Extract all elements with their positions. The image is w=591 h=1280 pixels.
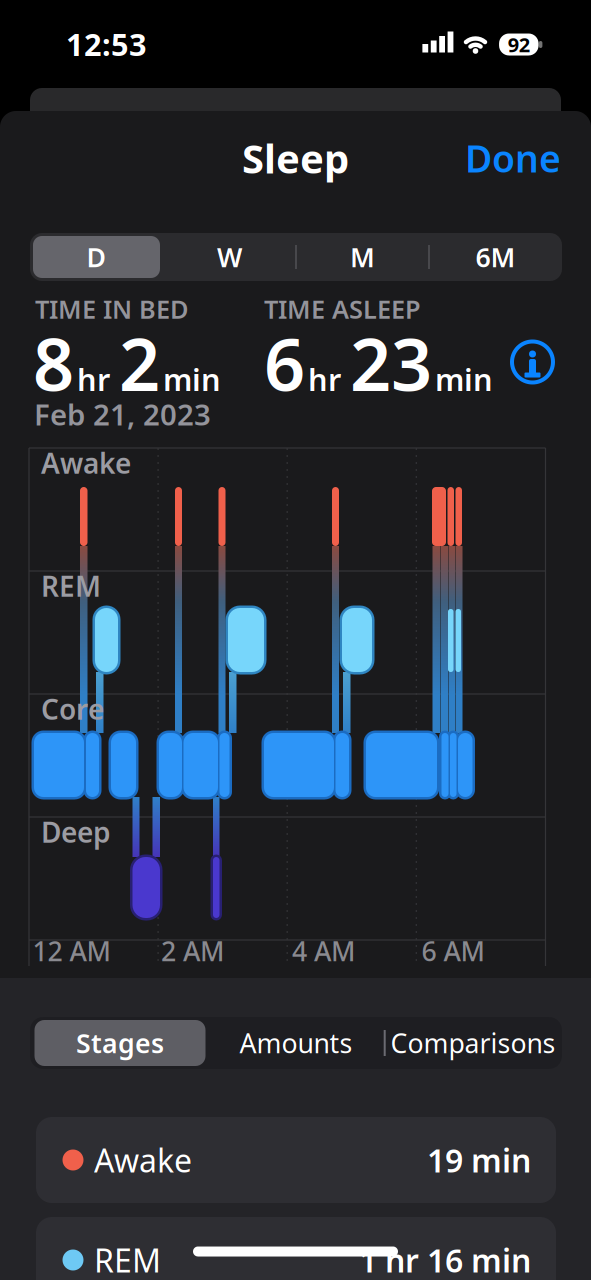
- button[interactable]: M: [302, 235, 422, 279]
- staticText: 4 AM: [292, 933, 355, 969]
- button[interactable]: 6M: [435, 235, 555, 279]
- staticText: 19 min: [427, 1139, 531, 1181]
- button[interactable]: Stages: [32, 1020, 207, 1066]
- staticText: REM: [94, 1239, 161, 1280]
- staticText: 6: [264, 315, 305, 411]
- staticText: Awake: [41, 444, 131, 482]
- staticText: REM: [41, 567, 101, 605]
- staticText: 12:53: [66, 24, 147, 64]
- staticText: Deep: [41, 813, 111, 851]
- staticText: 12 AM: [32, 933, 110, 969]
- staticText: 8: [33, 315, 74, 411]
- staticText: Core: [41, 690, 104, 728]
- staticText: 92: [508, 31, 530, 58]
- staticText: W: [217, 239, 242, 275]
- staticText: 2 AM: [161, 933, 224, 969]
- staticText: TIME IN BED: [35, 292, 189, 326]
- staticText: 2: [119, 315, 160, 411]
- staticText: Stages: [76, 1025, 164, 1061]
- button[interactable]: REM: [36, 1217, 556, 1280]
- staticText: Sleep: [242, 131, 349, 184]
- staticText: Comparisons: [390, 1025, 555, 1061]
- staticText: min: [435, 359, 493, 399]
- button[interactable]: Comparisons: [384, 1020, 562, 1066]
- button[interactable]: Done: [451, 135, 561, 181]
- staticText: 6 AM: [421, 933, 484, 969]
- button[interactable]: Amounts: [208, 1020, 383, 1066]
- staticText: min: [163, 359, 221, 399]
- button[interactable]: D: [36, 235, 156, 279]
- staticText: M: [350, 239, 375, 275]
- button[interactable]: Awake: [36, 1117, 556, 1203]
- staticText: Awake: [94, 1139, 192, 1181]
- staticText: Done: [465, 133, 561, 183]
- staticText: Amounts: [239, 1025, 352, 1061]
- staticText: 6M: [475, 239, 515, 275]
- staticText: 1 hr 16 min: [359, 1239, 531, 1280]
- staticText: 23: [350, 315, 432, 411]
- button[interactable]: [508, 338, 556, 386]
- staticText: hr: [77, 359, 110, 399]
- staticText: D: [86, 239, 106, 275]
- staticText: hr: [308, 359, 341, 399]
- staticText: Feb 21, 2023: [34, 394, 211, 433]
- button[interactable]: W: [169, 235, 289, 279]
- staticText: TIME ASLEEP: [264, 292, 421, 326]
